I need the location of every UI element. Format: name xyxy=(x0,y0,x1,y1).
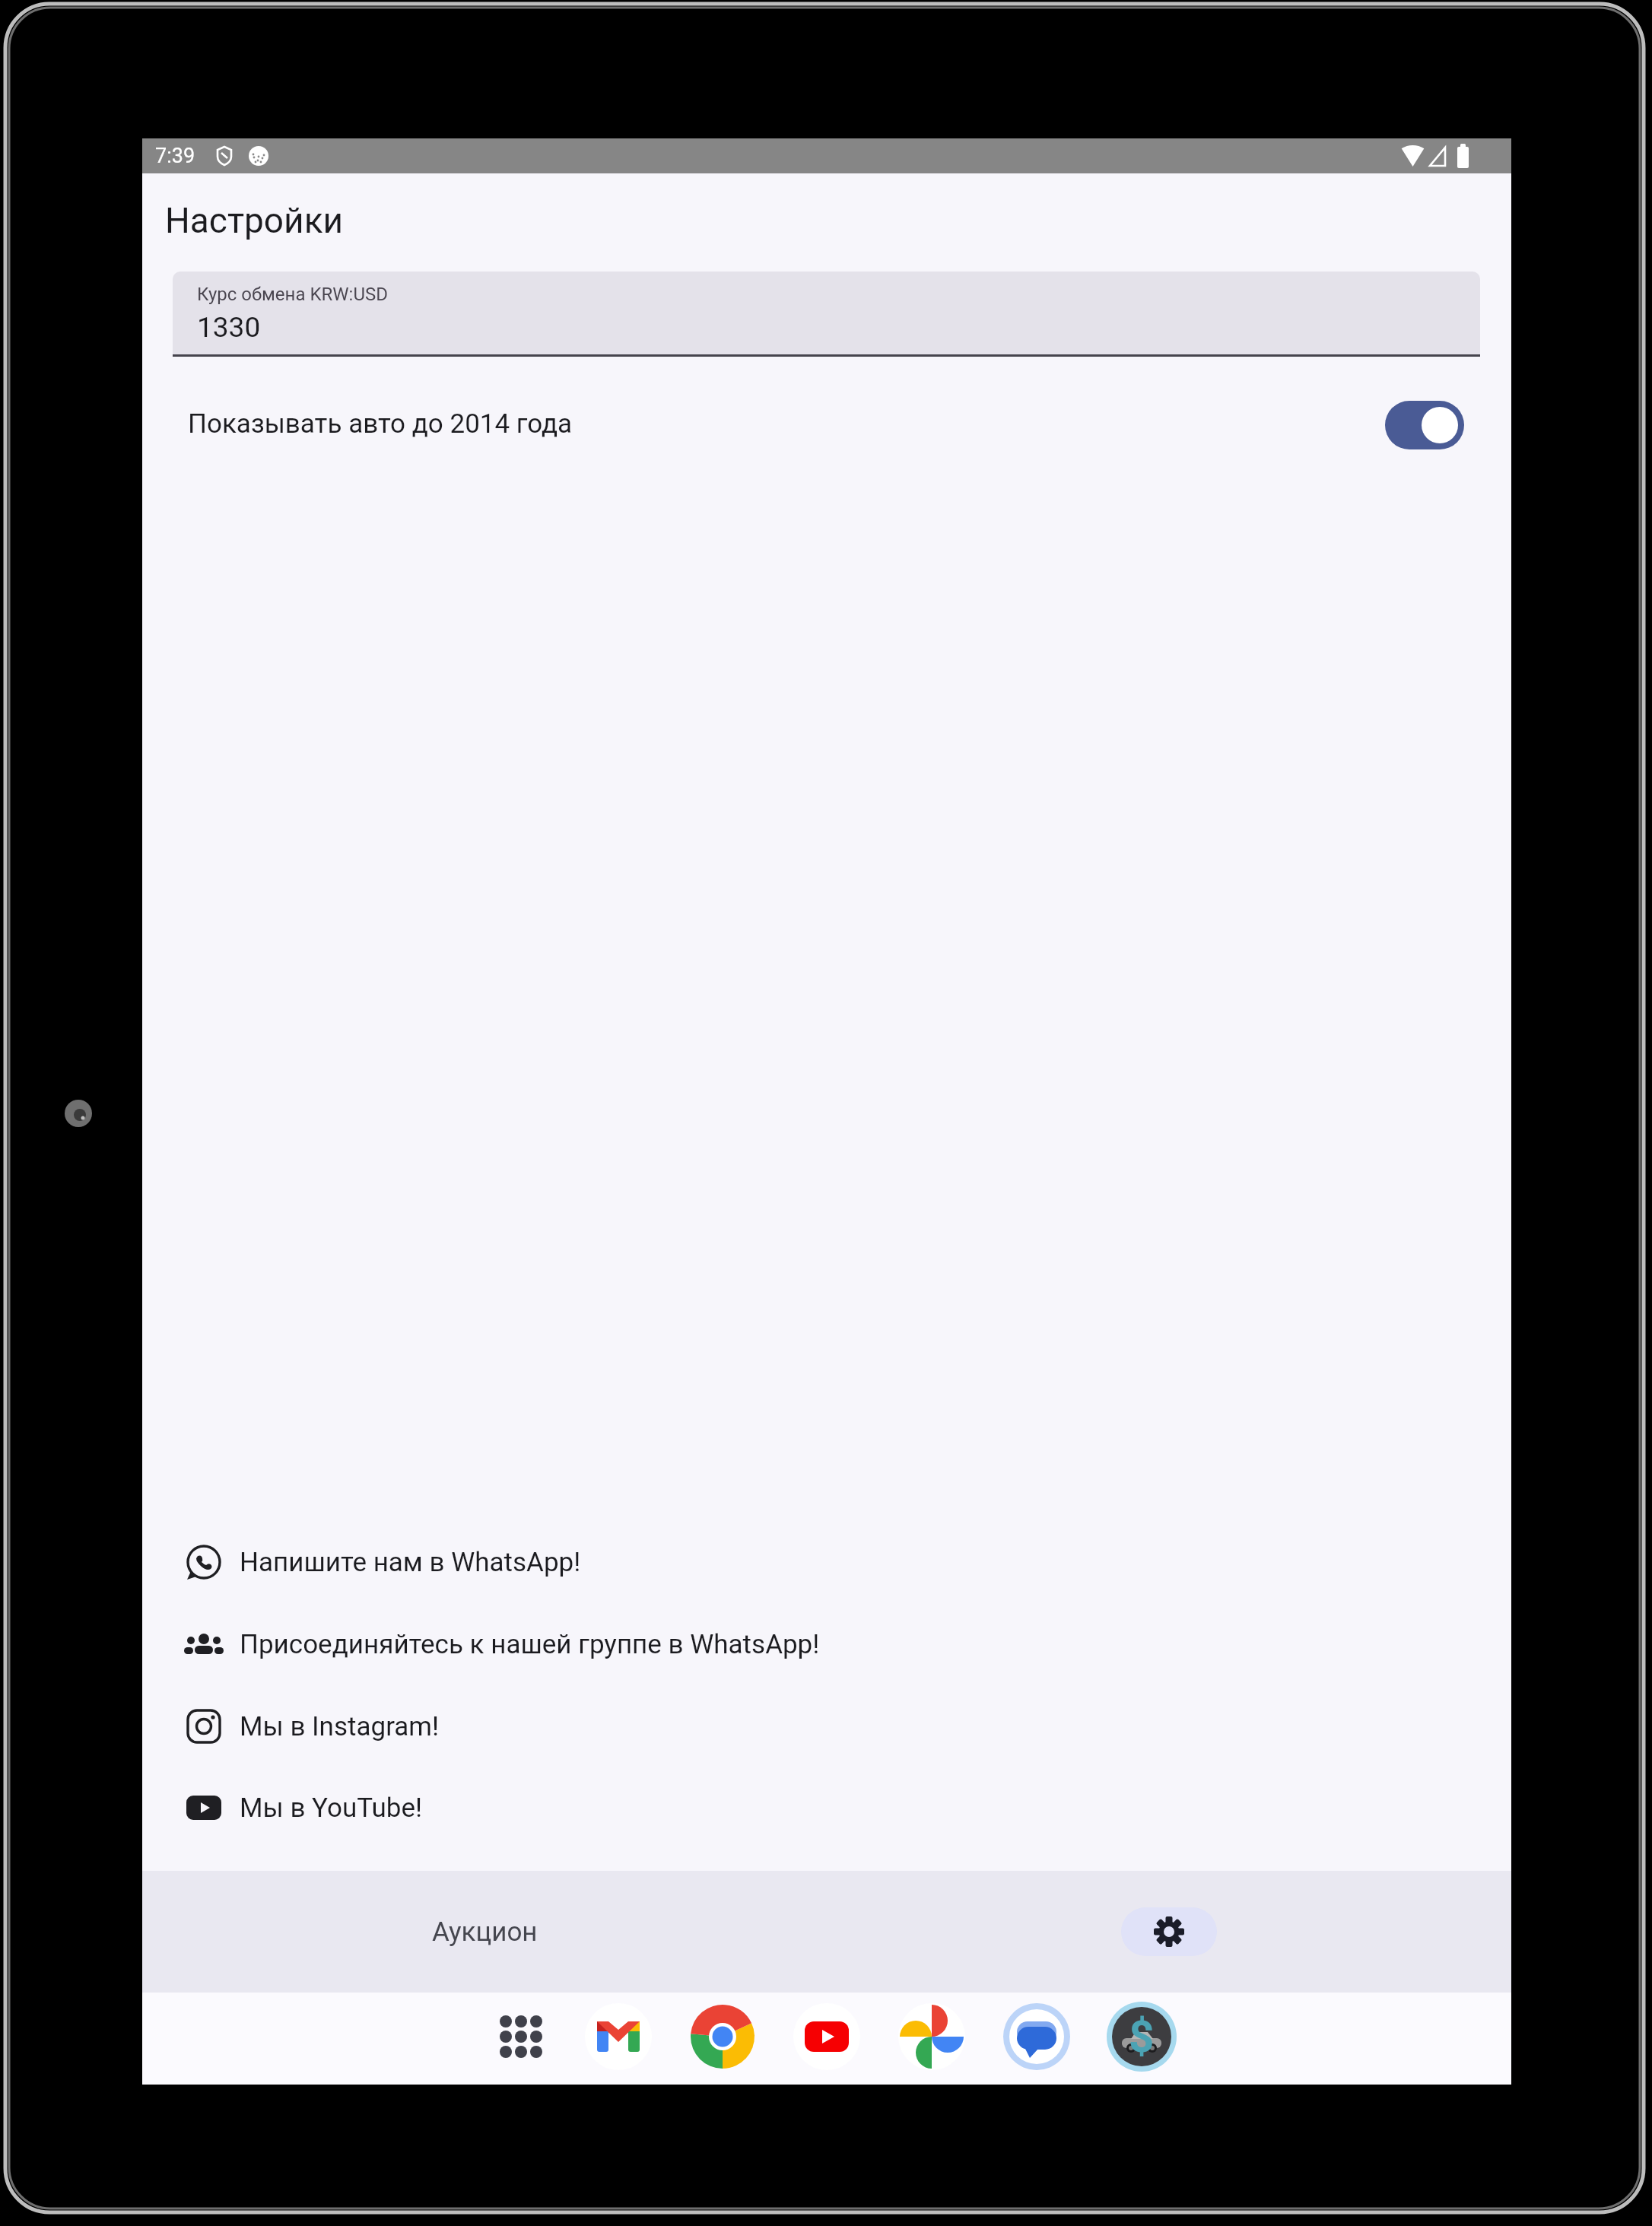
button[interactable]: Аукцион xyxy=(142,1871,827,1993)
button[interactable] xyxy=(582,2000,655,2073)
staticText: $ xyxy=(1129,2011,1155,2062)
staticText: 1330 xyxy=(197,311,261,344)
button[interactable]: Напишите нам в WhatsApp! xyxy=(142,1532,1511,1592)
button[interactable]: Мы в Instagram! xyxy=(142,1696,1511,1757)
button[interactable]: Курс обмена KRW:USD xyxy=(173,272,1480,357)
button[interactable]: $ xyxy=(1105,2000,1178,2073)
staticText: Курс обмена KRW:USD xyxy=(197,284,388,305)
button[interactable] xyxy=(790,2000,863,2073)
button[interactable] xyxy=(1000,2000,1073,2073)
button[interactable]: Присоединяйтесь к нашей группе в WhatsAp… xyxy=(142,1614,1511,1675)
staticText: 7:39 xyxy=(155,144,195,168)
staticText: Показывать авто до 2014 года xyxy=(188,408,573,440)
staticText: Мы в YouTube! xyxy=(240,1793,423,1824)
button[interactable]: Показывать авто до 2014 года xyxy=(142,393,1511,454)
staticText: Напишите нам в WhatsApp! xyxy=(240,1547,581,1578)
staticText: Настройки xyxy=(165,200,344,241)
button[interactable] xyxy=(686,2000,759,2073)
button[interactable]: Мы в YouTube! xyxy=(142,1777,1511,1838)
staticText: Присоединяйтесь к нашей группе в WhatsAp… xyxy=(240,1629,820,1660)
button[interactable] xyxy=(484,2000,558,2073)
button[interactable] xyxy=(895,2000,968,2073)
staticText: Мы в Instagram! xyxy=(240,1711,440,1742)
button[interactable] xyxy=(827,1871,1511,1993)
staticText: Аукцион xyxy=(432,1916,538,1948)
